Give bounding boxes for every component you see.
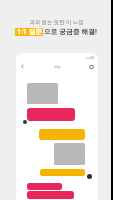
button[interactable]: Notifications bbox=[88, 63, 95, 70]
button[interactable] bbox=[39, 129, 85, 140]
button[interactable] bbox=[40, 169, 85, 176]
staticText: 1:1 질문 bbox=[17, 27, 43, 36]
staticText: 상담 bbox=[54, 65, 61, 69]
button[interactable]: Back bbox=[19, 63, 26, 70]
button[interactable] bbox=[27, 183, 62, 190]
staticText: 으로 궁금증 해결! bbox=[44, 27, 98, 36]
staticText: 과외 받는 듯한 이 느낌 bbox=[29, 18, 84, 25]
button[interactable] bbox=[27, 108, 75, 121]
button[interactable] bbox=[27, 191, 74, 199]
staticText: ▾▴▮▮ bbox=[86, 55, 95, 60]
